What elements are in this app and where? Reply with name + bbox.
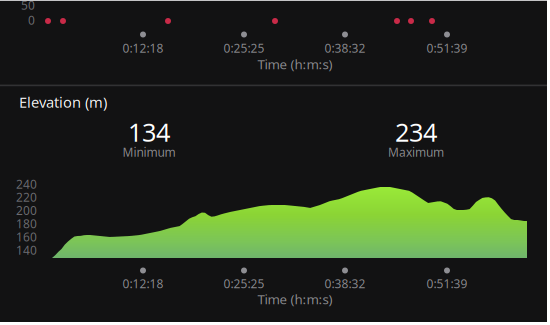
staticText: 0 (28, 12, 35, 28)
staticText: 134 (128, 115, 170, 149)
staticText: 0:51:39 (426, 275, 467, 291)
staticText: 234 (395, 115, 437, 149)
staticText: 160 (16, 229, 37, 245)
staticText: 180 (16, 216, 37, 231)
staticText: 0:38:32 (324, 275, 365, 291)
staticText: Elevation (m) (19, 92, 107, 112)
staticText: 50 (21, 0, 35, 13)
staticText: 0:38:32 (324, 40, 365, 56)
staticText: Time (h:m:s) (257, 290, 332, 308)
staticText: 0:25:25 (223, 40, 264, 56)
staticText: 0:12:18 (122, 40, 163, 56)
staticText: 200 (16, 202, 37, 218)
staticText: 240 (16, 176, 37, 192)
staticText: 140 (16, 242, 37, 258)
staticText: Maximum (388, 144, 444, 160)
staticText: 0:12:18 (122, 275, 163, 291)
staticText: Minimum (122, 144, 175, 160)
staticText: 0:51:39 (426, 40, 467, 56)
staticText: 0:25:25 (223, 275, 264, 291)
staticText: 220 (16, 189, 37, 205)
staticText: Time (h:m:s) (257, 55, 332, 73)
